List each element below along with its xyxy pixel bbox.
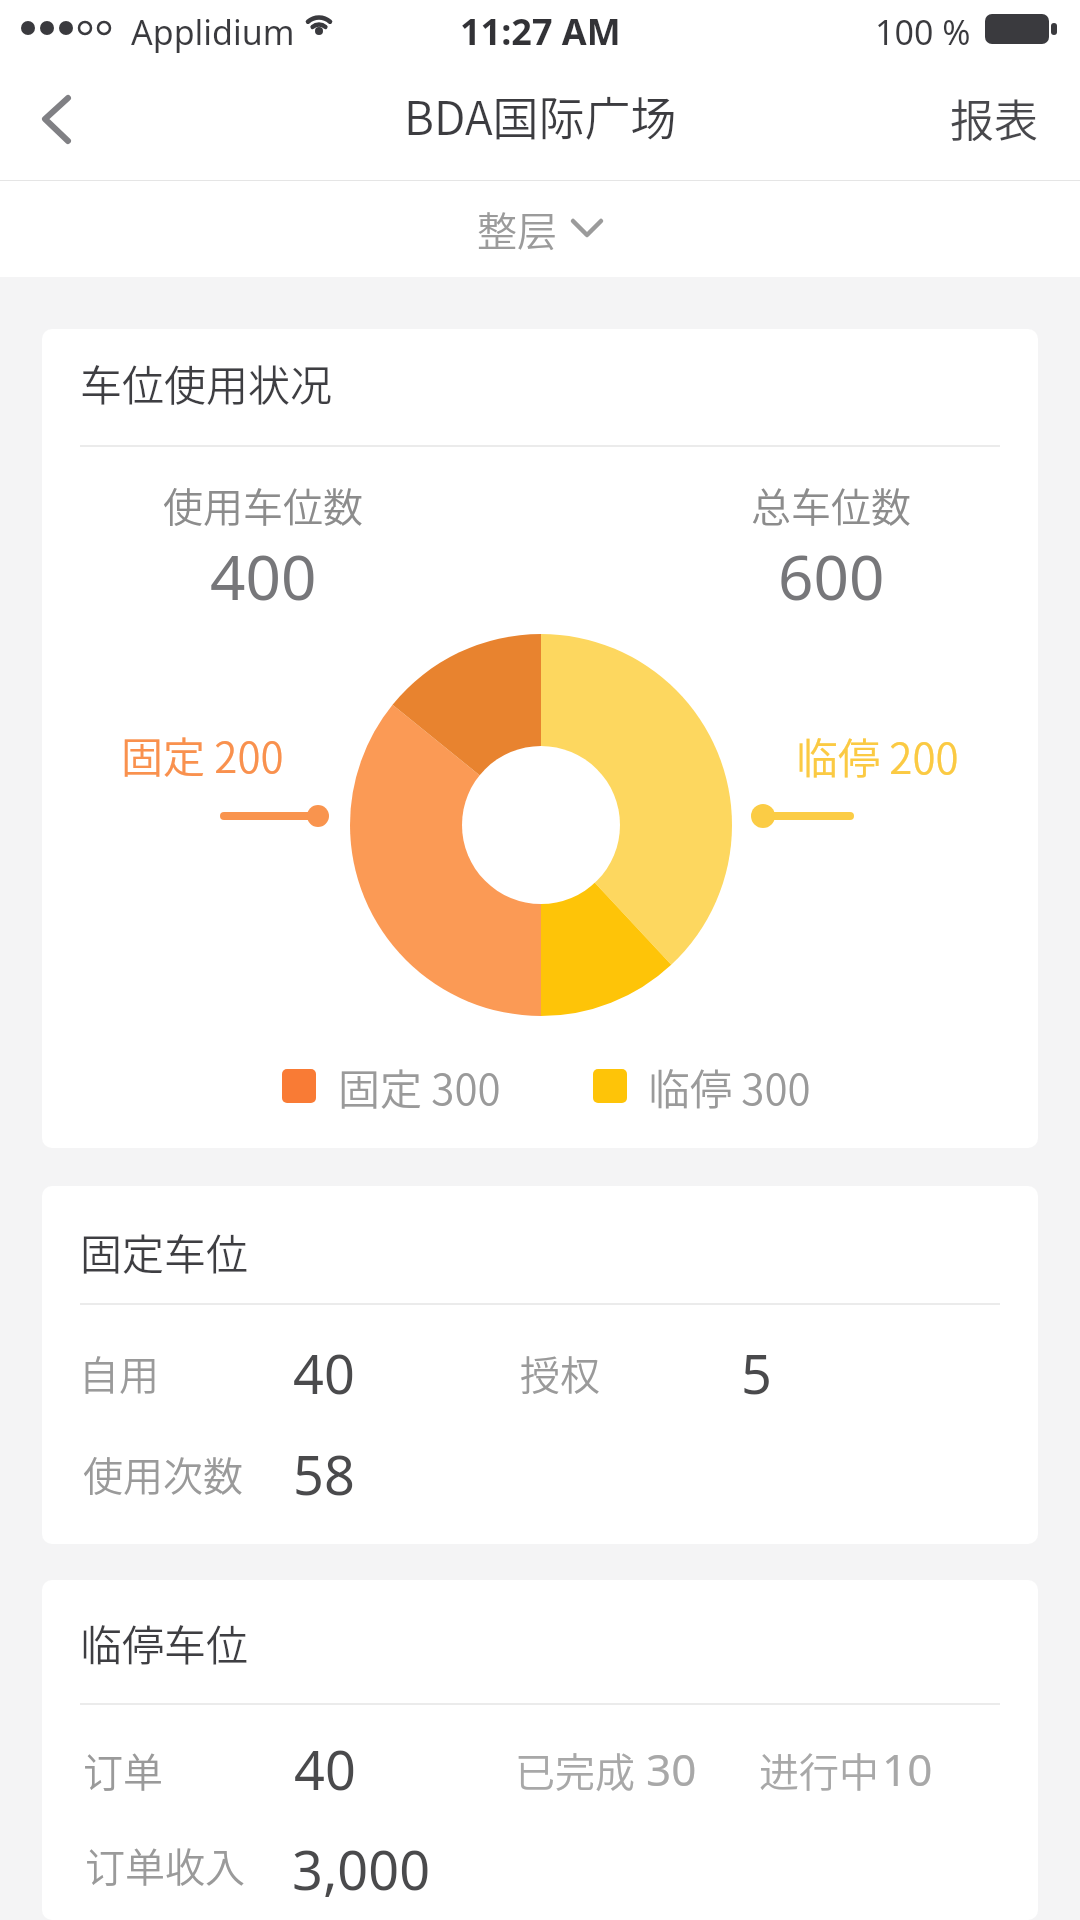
staticText: 固定 300: [338, 1056, 501, 1117]
staticText: 600: [778, 534, 885, 618]
staticText: 100 %: [875, 9, 971, 55]
staticText: 使用次数: [83, 1445, 243, 1503]
staticText: 固定车位: [80, 1221, 249, 1282]
button[interactable]: [20, 87, 90, 151]
staticText: 40: [293, 1336, 355, 1410]
staticText: 订单: [83, 1741, 163, 1799]
staticText: 30: [646, 1739, 697, 1799]
staticText: 固定 200: [121, 724, 284, 785]
staticText: 车位使用状况: [80, 352, 333, 413]
staticText: 40: [294, 1732, 356, 1806]
button[interactable]: 整层: [461, 190, 619, 268]
button[interactable]: 报表: [938, 74, 1050, 162]
staticText: BDA国际广场: [404, 82, 677, 149]
staticText: 5: [741, 1336, 772, 1410]
staticText: 临停 200: [796, 725, 959, 786]
staticText: 已完成: [515, 1741, 635, 1799]
staticText: 临停车位: [80, 1612, 249, 1673]
staticText: 订单收入: [85, 1836, 245, 1894]
staticText: 自用: [79, 1344, 159, 1402]
staticText: 3,000: [292, 1832, 431, 1906]
staticText: 整层: [477, 200, 557, 258]
staticText: Applidium: [131, 9, 295, 55]
staticText: 11:27 AM: [460, 7, 621, 56]
staticText: 报表: [950, 86, 1038, 150]
staticText: 10: [882, 1739, 933, 1799]
staticText: 进行中: [759, 1741, 879, 1799]
staticText: 总车位数: [751, 476, 911, 534]
staticText: 400: [210, 534, 317, 618]
staticText: 授权: [520, 1344, 600, 1402]
staticText: 临停 300: [648, 1056, 811, 1117]
staticText: 使用车位数: [163, 476, 363, 534]
staticText: 58: [293, 1437, 355, 1511]
